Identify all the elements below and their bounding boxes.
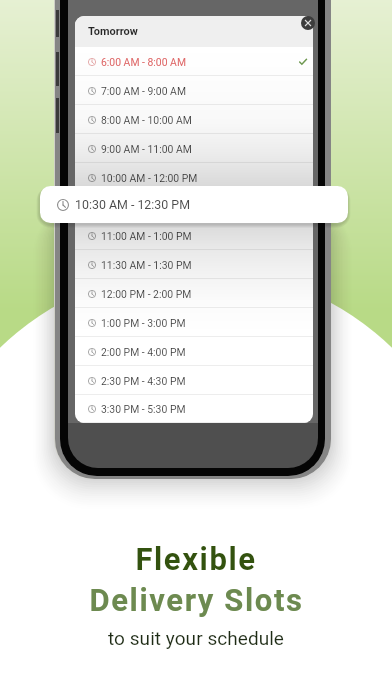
button[interactable]: 9:00 AM - 11:00 AM <box>75 134 313 163</box>
button[interactable]: 11:30 AM - 1:30 PM <box>75 250 313 279</box>
button[interactable]: 1:00 PM - 3:00 PM <box>75 308 313 337</box>
button[interactable]: 3:30 PM - 5:30 PM <box>75 395 313 423</box>
staticText: Flexible <box>135 541 257 577</box>
staticText: 1:00 PM - 3:00 PM <box>101 317 186 329</box>
staticText: 12:00 PM - 2:00 PM <box>101 288 192 300</box>
staticText: 6:00 AM - 8:00 AM <box>101 56 186 68</box>
button[interactable]: 10:30 AM - 12:30 PM <box>75 192 313 221</box>
staticText: Delivery Slots <box>89 582 304 618</box>
button[interactable]: Tomorrow <box>75 16 313 47</box>
button[interactable]: Close <box>301 16 315 30</box>
staticText: 8:00 AM - 10:00 AM <box>101 114 192 126</box>
staticText: 10:30 AM - 12:30 PM <box>75 197 190 212</box>
button[interactable]: 10:30 AM - 12:30 PM <box>40 186 348 223</box>
button[interactable]: 11:00 AM - 1:00 PM <box>75 221 313 250</box>
staticText: to suit your schedule <box>108 627 284 649</box>
staticText: 7:00 AM - 9:00 AM <box>101 85 186 97</box>
staticText: Tomorrow <box>88 25 138 38</box>
staticText: 9:00 AM - 11:00 AM <box>101 143 192 155</box>
button[interactable]: 2:00 PM - 4:00 PM <box>75 337 313 366</box>
button[interactable]: 8:00 AM - 10:00 AM <box>75 105 313 134</box>
button[interactable]: 2:30 PM - 4:30 PM <box>75 366 313 395</box>
staticText: 11:30 AM - 1:30 PM <box>101 259 192 271</box>
button[interactable]: 6:00 AM - 8:00 AM <box>75 47 313 76</box>
staticText: 3:30 PM - 5:30 PM <box>101 403 186 415</box>
staticText: 11:00 AM - 1:00 PM <box>101 230 192 242</box>
button[interactable]: 7:00 AM - 9:00 AM <box>75 76 313 105</box>
staticText: 10:30 AM - 12:30 PM <box>101 201 198 213</box>
staticText: 10:00 AM - 12:00 PM <box>101 172 198 184</box>
button[interactable]: 10:00 AM - 12:00 PM <box>75 163 313 192</box>
staticText: 2:00 PM - 4:00 PM <box>101 346 186 358</box>
button[interactable]: 12:00 PM - 2:00 PM <box>75 279 313 308</box>
staticText: 2:30 PM - 4:30 PM <box>101 375 186 387</box>
